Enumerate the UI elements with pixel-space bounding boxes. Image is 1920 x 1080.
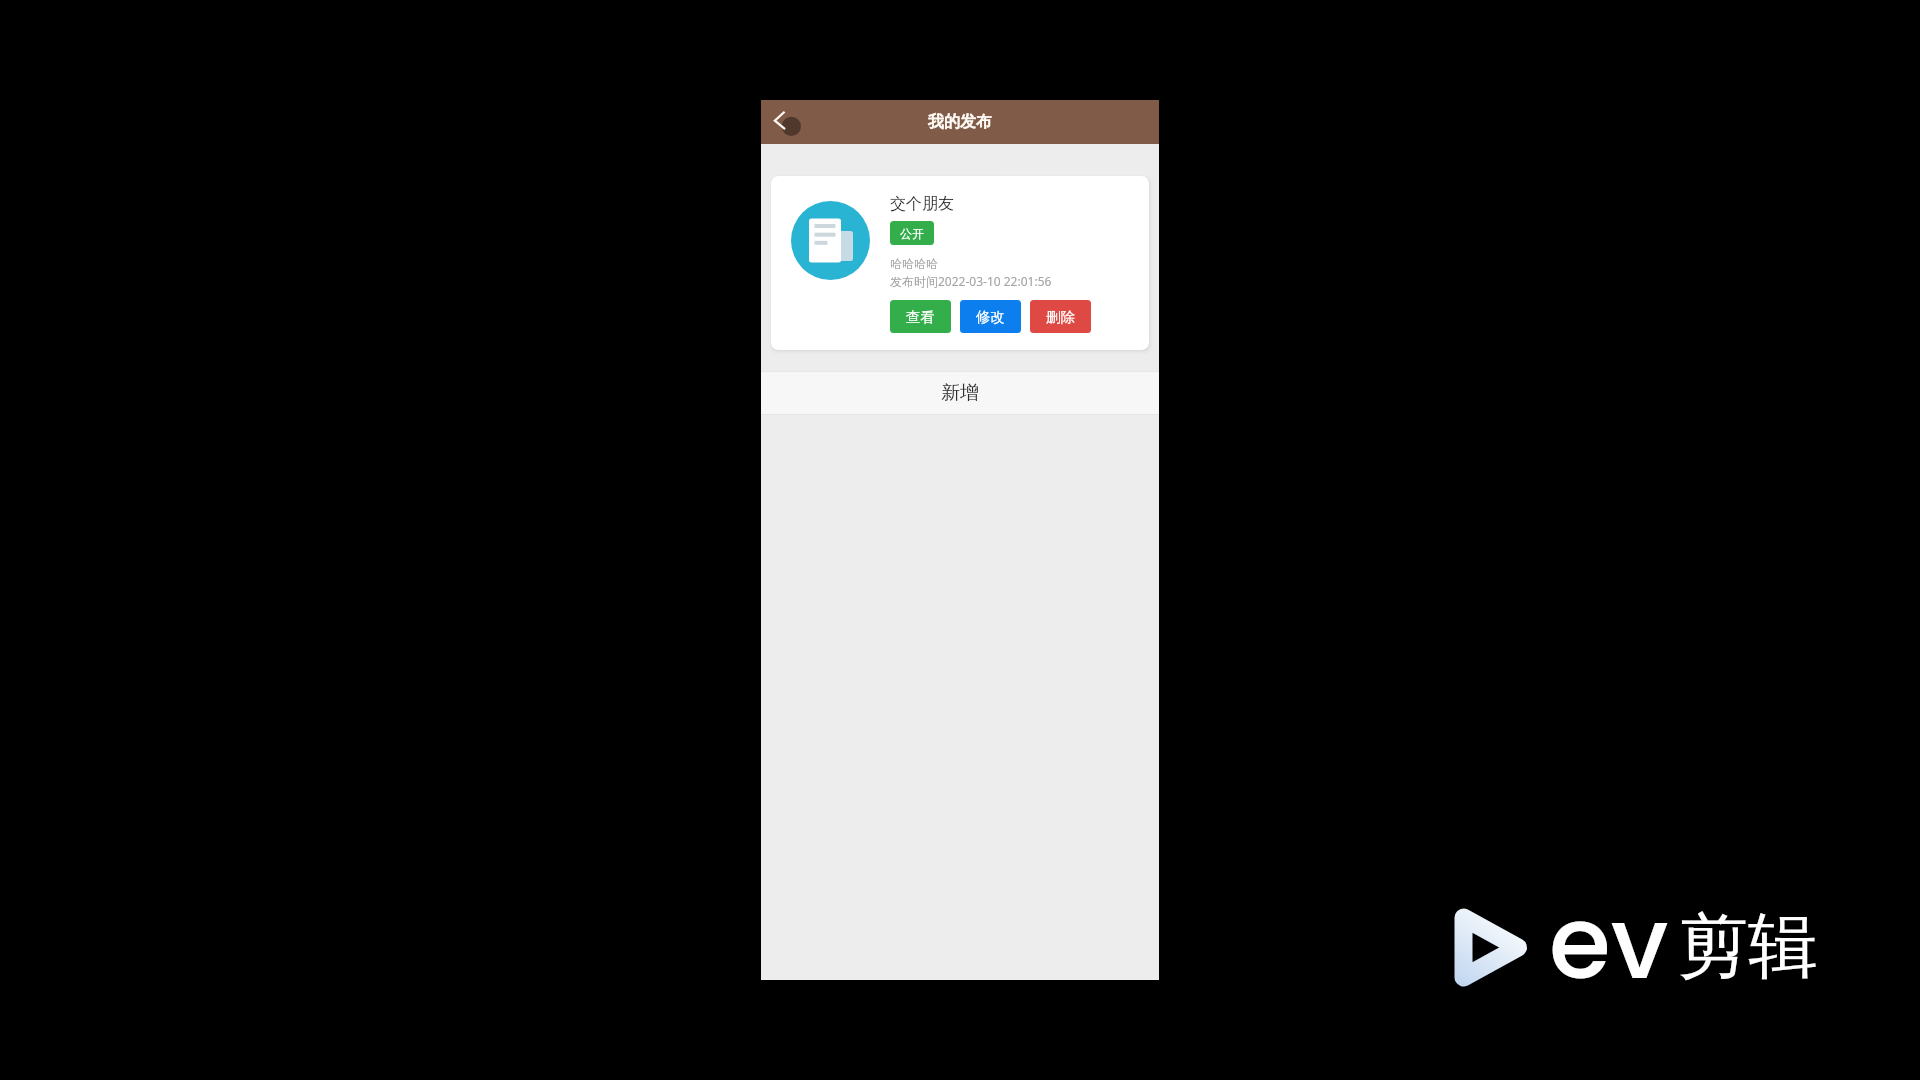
staticText: 我的发布 xyxy=(928,112,992,132)
staticText: 删除 xyxy=(1046,308,1075,326)
staticText: 公开 xyxy=(900,226,924,241)
staticText: ev xyxy=(1549,873,1669,1013)
button[interactable]: 修改 xyxy=(960,300,1021,333)
staticText: 修改 xyxy=(976,308,1005,326)
button[interactable]: 新增 xyxy=(761,371,1159,415)
button[interactable]: 查看 xyxy=(890,300,951,333)
staticText: 剪辑 xyxy=(1678,903,1818,991)
staticText: 哈哈哈哈 xyxy=(890,256,938,271)
staticText: 交个朋友 xyxy=(890,194,954,214)
staticText: 发布时间2022-03-10 22:01:56 xyxy=(890,273,1052,289)
button[interactable]: Back xyxy=(763,100,807,144)
staticText: 新增 xyxy=(941,381,979,405)
button[interactable]: 交个朋友 xyxy=(771,176,1149,350)
button[interactable]: 删除 xyxy=(1030,300,1091,333)
staticText: 查看 xyxy=(906,308,935,326)
